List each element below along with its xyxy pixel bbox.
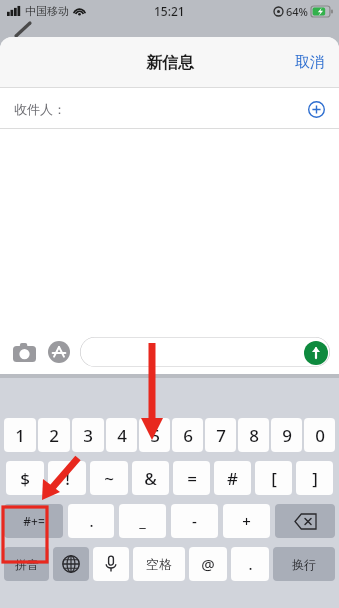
button[interactable]: + xyxy=(223,504,270,538)
staticText: 5 xyxy=(150,424,160,447)
staticText: # xyxy=(227,467,238,490)
staticText: ~ xyxy=(104,467,114,490)
staticText: 6 xyxy=(183,424,193,447)
staticText: 9 xyxy=(282,424,292,447)
staticText: 2 xyxy=(49,424,59,447)
staticText: 收件人： xyxy=(14,101,66,117)
button[interactable]: 1 xyxy=(4,418,36,452)
button[interactable]: App Store xyxy=(44,337,74,367)
button[interactable]: # xyxy=(214,461,251,495)
button[interactable]: ] xyxy=(296,461,333,495)
button[interactable]: Add recipient xyxy=(301,94,331,124)
button[interactable]: 8 xyxy=(238,418,269,452)
button[interactable]: 4 xyxy=(106,418,137,452)
staticText: ! xyxy=(65,467,70,490)
staticText: $ xyxy=(20,467,30,490)
button[interactable]: [ xyxy=(255,461,292,495)
staticText: 空格 xyxy=(146,556,172,572)
staticText: 新信息 xyxy=(146,53,194,73)
button[interactable]: Send xyxy=(303,340,328,365)
staticText: 0 xyxy=(315,424,325,447)
button[interactable]: . xyxy=(68,504,114,538)
staticText: 64% xyxy=(286,4,308,19)
button[interactable]: Send xyxy=(80,337,330,367)
button[interactable]: $ xyxy=(6,461,44,495)
button[interactable]: . xyxy=(231,547,269,581)
button[interactable]: 9 xyxy=(271,418,302,452)
button[interactable]: = xyxy=(173,461,210,495)
staticText: [ xyxy=(271,467,277,490)
button[interactable]: backspace xyxy=(275,504,335,538)
button[interactable]: 5 xyxy=(139,418,170,452)
button[interactable]: globe xyxy=(53,547,89,581)
button[interactable]: Camera xyxy=(9,337,39,367)
button[interactable]: 2 xyxy=(38,418,70,452)
button[interactable]: - xyxy=(171,504,218,538)
staticText: 7 xyxy=(216,424,226,447)
button[interactable]: 7 xyxy=(205,418,236,452)
staticText: 取消 xyxy=(295,53,325,72)
staticText: 换行 xyxy=(292,557,316,572)
button[interactable]: & xyxy=(132,461,169,495)
button[interactable]: _ xyxy=(119,504,166,538)
button[interactable]: #+= xyxy=(4,504,63,538)
button[interactable]: 换行 xyxy=(273,547,335,581)
staticText: & xyxy=(144,467,157,490)
button[interactable]: 0 xyxy=(304,418,335,452)
staticText: 拼音 xyxy=(15,557,39,572)
button[interactable]: 空格 xyxy=(133,547,185,581)
button[interactable]: 拼音 xyxy=(4,547,49,581)
staticText: = xyxy=(187,467,197,490)
button[interactable]: 3 xyxy=(72,418,104,452)
staticText: 1 xyxy=(15,424,25,447)
staticText: 3 xyxy=(83,424,93,447)
staticText: 中国移动 xyxy=(25,4,69,18)
staticText: ] xyxy=(312,467,318,490)
button[interactable]: 取消 xyxy=(281,43,339,82)
button[interactable]: ! xyxy=(48,461,86,495)
staticText: 15:21 xyxy=(154,3,185,19)
staticText: @ xyxy=(201,554,215,574)
button[interactable]: @ xyxy=(189,547,227,581)
staticText: 8 xyxy=(249,424,259,447)
button[interactable]: mic xyxy=(93,547,129,581)
staticText: + xyxy=(242,511,251,531)
staticText: #+= xyxy=(23,513,45,529)
staticText: - xyxy=(192,511,197,531)
staticText: . xyxy=(89,511,94,531)
staticText: 4 xyxy=(117,424,127,447)
staticText: _ xyxy=(139,511,146,531)
button[interactable]: ~ xyxy=(90,461,128,495)
button[interactable]: 6 xyxy=(172,418,203,452)
staticText: . xyxy=(248,554,253,574)
